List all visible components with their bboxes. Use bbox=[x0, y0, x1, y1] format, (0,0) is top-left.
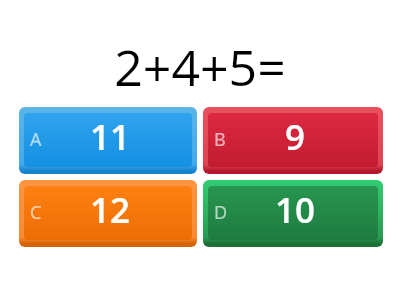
staticText: C bbox=[30, 200, 42, 225]
button[interactable]: A bbox=[19, 107, 197, 174]
staticText: D bbox=[214, 200, 228, 225]
button[interactable]: B bbox=[203, 107, 383, 174]
button[interactable]: D bbox=[203, 180, 383, 247]
button[interactable]: C bbox=[19, 180, 197, 247]
staticText: A bbox=[30, 127, 42, 152]
staticText: 12 bbox=[90, 186, 130, 234]
staticText: 11 bbox=[90, 113, 130, 161]
staticText: 10 bbox=[275, 186, 315, 234]
staticText: 9 bbox=[285, 113, 305, 161]
staticText: 2+4+5= bbox=[0, 33, 400, 101]
staticText: B bbox=[214, 127, 226, 152]
